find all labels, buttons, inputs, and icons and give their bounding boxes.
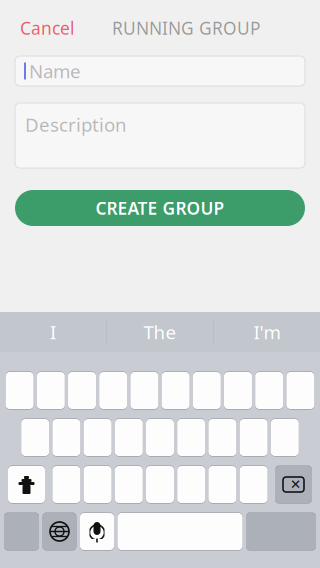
button[interactable]: E — [68, 371, 96, 409]
staticText: Name — [29, 59, 81, 83]
button[interactable]: D — [84, 418, 112, 456]
button[interactable]: L — [271, 418, 299, 456]
button[interactable]: space — [117, 512, 242, 550]
button[interactable]: A — [21, 418, 49, 456]
button[interactable]: I'm — [214, 313, 320, 351]
staticText: The — [143, 320, 176, 344]
staticText: RUNNING GROUP — [112, 16, 260, 39]
button[interactable]: Y — [162, 371, 190, 409]
button[interactable]: C — [115, 465, 143, 503]
button[interactable]: Q — [6, 371, 34, 409]
button[interactable]: N — [208, 465, 236, 503]
button[interactable]: I — [224, 371, 252, 409]
button[interactable]: K — [240, 418, 268, 456]
staticText: ✕ — [290, 477, 301, 492]
staticText: Description — [25, 112, 127, 137]
button[interactable]: P — [286, 371, 314, 409]
button[interactable]: V — [146, 465, 174, 503]
staticText: I'm — [253, 320, 280, 344]
button[interactable]: R — [99, 371, 127, 409]
button[interactable]: J — [208, 418, 236, 456]
staticText: I — [50, 320, 56, 344]
button[interactable]: Next keyboard — [42, 512, 76, 550]
button[interactable]: The — [107, 313, 213, 351]
button[interactable]: S — [52, 418, 80, 456]
button[interactable]: Cancel — [0, 8, 74, 47]
button[interactable]: T — [130, 371, 158, 409]
button[interactable]: CREATE GROUP — [15, 190, 305, 226]
button[interactable]: X — [84, 465, 112, 503]
button[interactable]: Delete — [275, 465, 312, 503]
staticText: CREATE GROUP — [95, 196, 224, 219]
button[interactable]: B — [177, 465, 205, 503]
button[interactable]: U — [193, 371, 221, 409]
button[interactable]: Dictation — [80, 512, 114, 550]
button[interactable]: M — [240, 465, 268, 503]
staticText: Cancel — [20, 16, 74, 39]
button[interactable]: W — [37, 371, 65, 409]
button[interactable]: O — [255, 371, 283, 409]
button[interactable]: Shift — [8, 465, 45, 503]
button[interactable]: F — [115, 418, 143, 456]
button[interactable]: I — [0, 313, 106, 351]
button[interactable]: Z — [52, 465, 80, 503]
button[interactable]: H — [177, 418, 205, 456]
button[interactable]: G — [146, 418, 174, 456]
